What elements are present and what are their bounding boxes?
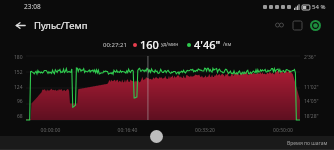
button[interactable]: Время по шагам: [287, 140, 328, 147]
staticText: 14'05": [304, 98, 319, 105]
staticText: 00:16:40: [89, 127, 166, 134]
staticText: 68: [17, 113, 23, 120]
button[interactable]: Info: [288, 16, 306, 34]
staticText: 11'02": [304, 84, 319, 91]
staticText: 00:27:21: [103, 41, 127, 49]
staticText: 2'36": [304, 54, 316, 61]
staticText: 00:33:20: [166, 127, 244, 134]
staticText: 160: [140, 37, 159, 52]
staticText: 180: [14, 54, 23, 61]
staticText: /км: [223, 41, 232, 48]
staticText: 00:50:00: [244, 127, 322, 134]
staticText: 18'28": [304, 113, 319, 120]
staticText: 124: [14, 84, 23, 91]
other: Back: [14, 19, 27, 32]
button[interactable]: Compare: [270, 16, 288, 34]
staticText: Пульс/Темп: [34, 19, 88, 32]
button[interactable]: Back: [14, 19, 88, 32]
staticText: уд/мин: [161, 41, 179, 48]
staticText: 152: [14, 69, 23, 76]
staticText: Время по шагам: [287, 140, 328, 147]
staticText: 4'46": [194, 37, 221, 52]
staticText: 54 %: [312, 3, 326, 11]
button[interactable]: Scrubber: [150, 130, 163, 143]
button[interactable]: Sync: [306, 16, 324, 34]
staticText: 96: [17, 98, 23, 105]
staticText: 23:08: [24, 2, 41, 11]
staticText: 00:00:00: [12, 127, 89, 134]
